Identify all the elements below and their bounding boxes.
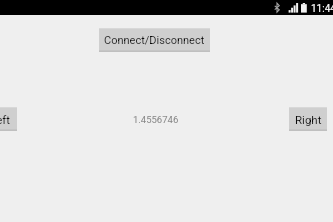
button[interactable]: Connect/Disconnect <box>99 28 210 52</box>
staticText: 11:44 <box>311 3 333 15</box>
button[interactable]: Right <box>289 107 327 131</box>
staticText: Right <box>295 113 322 126</box>
other: Bluetooth on <box>274 3 282 13</box>
button[interactable]: Left <box>0 107 17 131</box>
staticText: 1.4556746 <box>133 114 179 125</box>
other: Battery full <box>301 3 308 14</box>
other: Mobile signal <box>288 3 299 14</box>
staticText: Connect/Disconnect <box>104 34 205 47</box>
staticText: Left <box>0 113 11 126</box>
